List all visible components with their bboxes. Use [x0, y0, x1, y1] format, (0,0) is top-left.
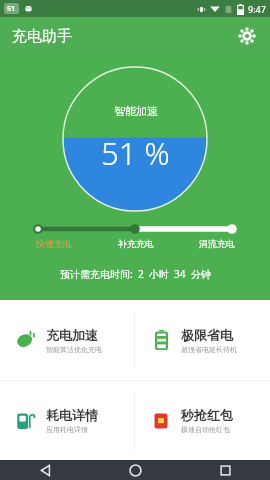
staticText: 极速自动抢红包	[181, 425, 230, 434]
staticText: 充电加速	[46, 327, 98, 343]
button[interactable]: Recents	[180, 460, 270, 480]
button[interactable]: Back	[0, 460, 90, 480]
staticText: 51 %	[101, 132, 170, 174]
staticText: 51	[7, 4, 16, 14]
staticText: 9:47	[248, 3, 266, 15]
staticText: 极限省电	[181, 327, 233, 343]
staticText: 补充充电	[118, 238, 154, 249]
staticText: 智能算法优化充电	[46, 345, 102, 354]
staticText: 智能加速	[114, 104, 158, 118]
staticText: 预计需充电时间: 2 小时 34 分钟	[60, 267, 211, 281]
staticText: 充电助手	[12, 27, 72, 46]
staticText: 超强省电延长待机	[181, 345, 237, 354]
button[interactable]: Home	[90, 460, 180, 480]
staticText: 涓流充电	[199, 238, 235, 249]
button[interactable]: 极限省电	[135, 300, 270, 380]
button[interactable]: 秒抢红包	[135, 381, 270, 460]
button[interactable]: 耗电详情	[0, 381, 134, 460]
button[interactable]: Charging stage slider	[0, 221, 270, 237]
staticText: 应用耗电详情	[46, 425, 88, 434]
button[interactable]: Settings	[233, 22, 261, 50]
staticText: 耗电详情	[46, 407, 98, 423]
staticText: 快速充电	[36, 238, 72, 249]
staticText: 秒抢红包	[181, 407, 233, 423]
button[interactable]: 充电加速	[0, 300, 134, 380]
